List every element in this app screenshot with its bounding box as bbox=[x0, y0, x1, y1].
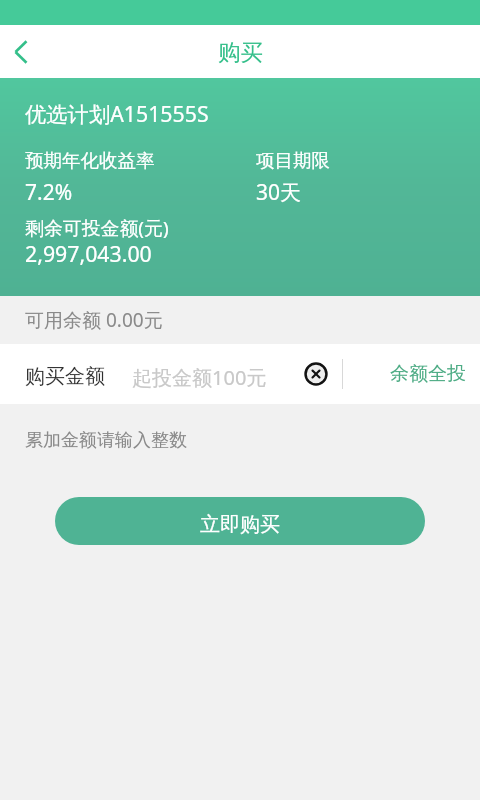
staticText: 累加金额请输入整数 bbox=[25, 429, 187, 452]
staticText: 优选计划A151555S bbox=[25, 99, 209, 128]
button[interactable]: 余额全投 bbox=[358, 344, 480, 404]
staticText: 立即购买 bbox=[200, 512, 280, 537]
staticText: 起投金额100元 bbox=[132, 364, 267, 391]
staticText: 项目期限 bbox=[256, 149, 330, 172]
staticText: 可用余额 0.00元 bbox=[25, 307, 163, 333]
button[interactable]: 购买金额 bbox=[0, 344, 294, 404]
staticText: 2,997,043.00 bbox=[25, 239, 152, 268]
staticText: 预期年化收益率 bbox=[25, 149, 155, 172]
staticText: 剩余可投金额(元) bbox=[25, 215, 169, 241]
staticText: 30天 bbox=[256, 178, 302, 207]
staticText: 余额全投 bbox=[390, 362, 466, 386]
button[interactable]: 立即购买 bbox=[55, 497, 425, 545]
staticText: 购买金额 bbox=[25, 364, 105, 389]
staticText: 7.2% bbox=[25, 178, 73, 207]
button[interactable]: Clear amount bbox=[294, 344, 338, 404]
button[interactable]: Back bbox=[0, 25, 46, 78]
staticText: 购买 bbox=[218, 38, 263, 66]
